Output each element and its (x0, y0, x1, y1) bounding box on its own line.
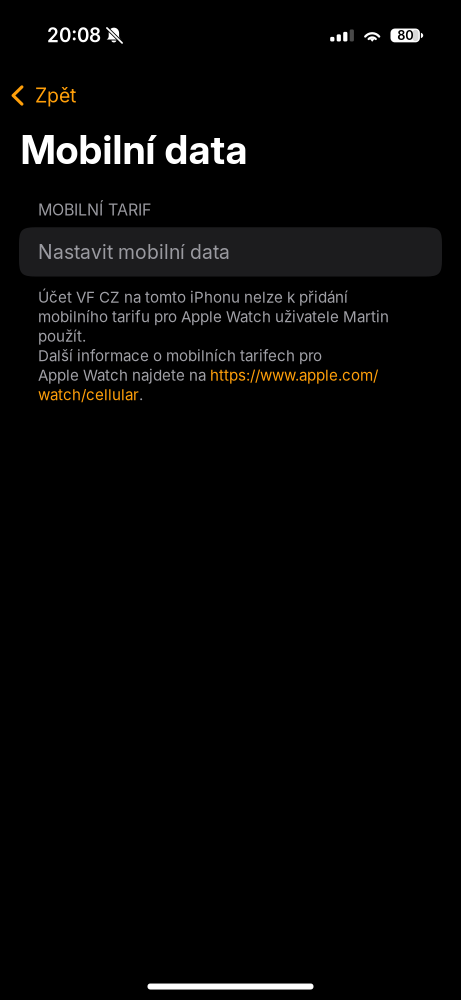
staticText: . (139, 386, 143, 404)
button[interactable]: Zpět (0, 63, 92, 128)
staticText: watch/cellular (38, 386, 139, 404)
staticText: https://www.apple.com/ (210, 366, 378, 384)
button[interactable]: watch/cellular (38, 386, 139, 404)
button[interactable]: Nastavit mobilní data (19, 227, 442, 277)
staticText: 20:08 (47, 24, 101, 47)
button[interactable]: https://www.apple.com/ (210, 366, 378, 384)
staticText: MOBILNÍ TARIF (38, 200, 151, 219)
staticText: Mobilní data (20, 126, 247, 174)
staticText: 80 (397, 28, 413, 43)
staticText: Zpět (35, 84, 76, 107)
staticText: Další informace o mobilních tarifech pro (38, 347, 322, 365)
staticText: Apple Watch najdete na (38, 366, 210, 384)
staticText: Nastavit mobilní data (38, 240, 230, 264)
staticText: mobilního tarifu pro Apple Watch uživate… (38, 308, 389, 326)
staticText: Účet VF CZ na tomto iPhonu nelze k přidá… (38, 288, 348, 306)
staticText: použít. (38, 327, 86, 345)
